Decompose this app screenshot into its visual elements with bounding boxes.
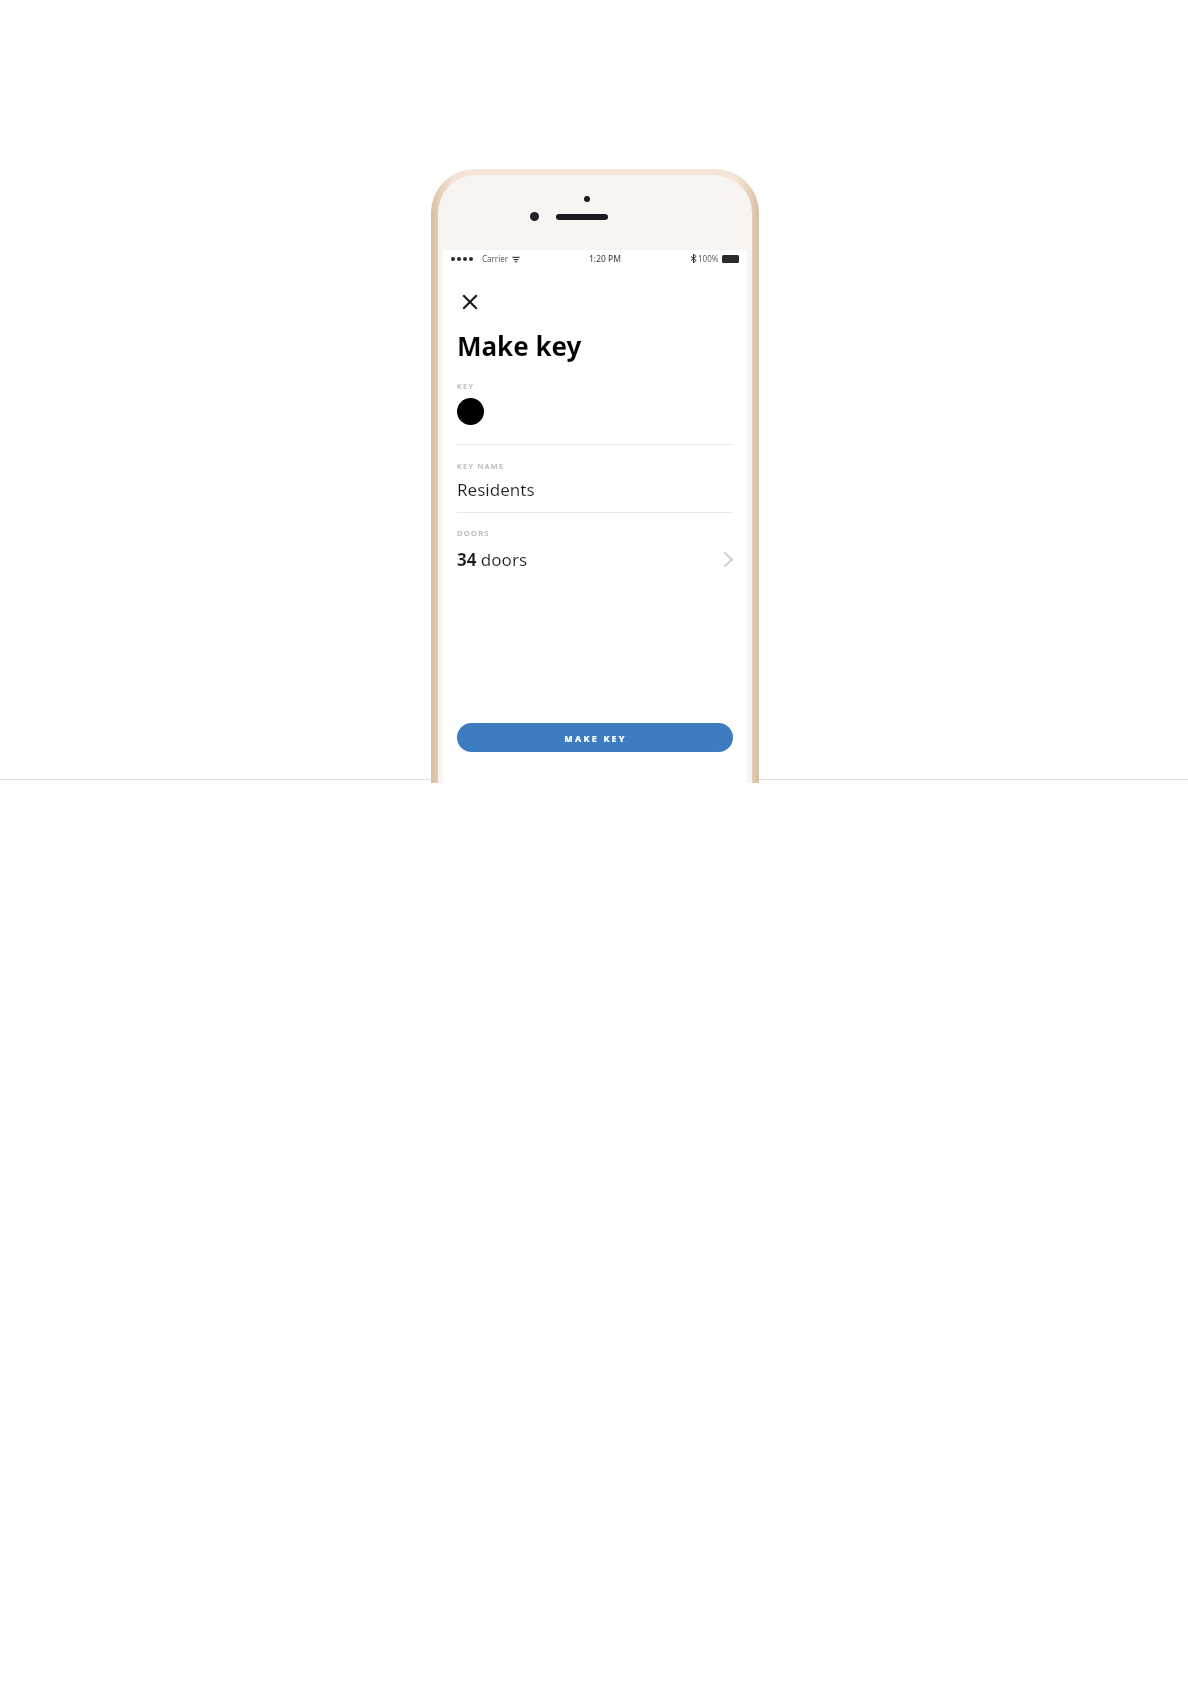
staticText: 1:20 PM [589, 253, 622, 265]
staticText: Make key [457, 328, 582, 363]
button[interactable]: MAKE KEY [457, 723, 733, 752]
staticText: Residents [457, 478, 535, 501]
staticText: Carrier [482, 253, 509, 264]
staticText: 34 doors [457, 548, 528, 571]
button[interactable]: Residents [457, 478, 733, 501]
button[interactable]: Key colour [457, 398, 484, 425]
button[interactable]: 34 doors [457, 544, 733, 574]
staticText: KEY [457, 381, 475, 391]
staticText: KEY NAME [457, 461, 505, 471]
staticText: 100% [698, 253, 719, 264]
staticText: DOORS [457, 528, 490, 538]
button[interactable]: Close [457, 289, 483, 315]
staticText: MAKE KEY [564, 732, 627, 744]
